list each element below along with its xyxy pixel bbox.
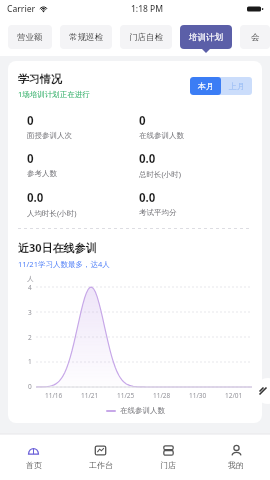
staticText: 0: [27, 113, 34, 129]
staticText: 11/21学习人数最多，达4人: [18, 259, 110, 269]
staticText: 0: [139, 113, 146, 129]
staticText: 4: [28, 283, 32, 292]
staticText: 1场培训计划正在进行: [18, 89, 90, 99]
button[interactable]: 本月: [190, 77, 221, 95]
button[interactable]: 常规巡检: [69, 25, 103, 49]
staticText: 11/21: [81, 391, 99, 400]
button[interactable]: Edit: [255, 378, 270, 404]
button[interactable]: 上月: [221, 77, 252, 95]
staticText: 考试平均分: [139, 208, 177, 217]
staticText: 0.0: [139, 190, 156, 206]
button[interactable]: 会: [240, 25, 270, 49]
staticText: 3: [28, 308, 32, 317]
staticText: 门店自检: [129, 32, 163, 43]
staticText: 0: [27, 151, 34, 167]
button[interactable]: 首页: [0, 434, 67, 480]
staticText: 我的: [228, 460, 244, 470]
staticText: 近30日在线参训: [18, 240, 97, 255]
staticText: 首页: [26, 460, 42, 470]
staticText: 12/01: [225, 391, 243, 400]
staticText: 面授参训人次: [27, 131, 72, 140]
staticText: 营业额: [17, 32, 43, 43]
staticText: 11/30: [189, 391, 207, 400]
staticText: 学习情况: [18, 72, 62, 86]
staticText: 在线参训人数: [139, 131, 184, 140]
staticText: 培训计划: [189, 32, 223, 43]
staticText: 2: [28, 333, 32, 342]
staticText: 工作台: [89, 460, 113, 470]
staticText: 11/25: [117, 391, 135, 400]
staticText: 人: [27, 275, 34, 283]
staticText: 常规巡检: [69, 32, 103, 43]
button[interactable]: 工作台: [67, 434, 134, 480]
button[interactable]: 门店: [134, 434, 202, 480]
button[interactable]: 培训计划: [189, 25, 223, 49]
staticText: 总时长(小时): [139, 169, 181, 179]
staticText: 会: [251, 32, 260, 43]
staticText: 本月: [198, 81, 214, 91]
staticText: Carrier: [7, 3, 36, 15]
button[interactable]: 营业额: [17, 25, 43, 49]
staticText: 0.0: [27, 190, 44, 206]
staticText: 0: [28, 382, 32, 391]
staticText: 11/28: [153, 391, 171, 400]
staticText: 在线参训人数: [120, 406, 165, 415]
staticText: 参考人数: [27, 169, 57, 178]
staticText: 门店: [160, 460, 176, 470]
staticText: 人均时长(小时): [27, 208, 77, 218]
staticText: 1: [28, 357, 32, 366]
staticText: 11/16: [45, 391, 63, 400]
button[interactable]: 我的: [202, 434, 270, 480]
staticText: 1:18 PM: [131, 3, 164, 15]
button[interactable]: 门店自检: [129, 25, 163, 49]
staticText: 0.0: [139, 151, 156, 167]
staticText: 上月: [229, 81, 245, 91]
